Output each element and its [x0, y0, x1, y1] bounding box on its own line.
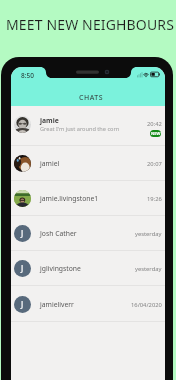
button[interactable]: J — [11, 251, 165, 286]
staticText: 8:50 — [21, 71, 34, 80]
staticText: MEET NEW NEIGHBOURS — [6, 15, 175, 34]
button[interactable]: jamie.livingstone1 — [11, 181, 165, 216]
staticText: J — [21, 228, 24, 239]
button[interactable]: J — [11, 216, 165, 251]
staticText: 16/04/2020 — [131, 301, 162, 309]
staticText: jglivingstone — [40, 264, 81, 273]
staticText: jamie — [40, 116, 59, 125]
staticText: yesterday — [135, 265, 162, 273]
staticText: J — [21, 299, 24, 310]
staticText: yesterday — [135, 230, 162, 238]
button[interactable]: jamiel — [11, 146, 165, 181]
staticText: jamiel — [40, 159, 60, 168]
staticText: CHATS — [79, 93, 104, 103]
staticText: jamie.livingstone1 — [40, 194, 99, 203]
staticText: Great I'm just around the corn — [40, 125, 120, 133]
staticText: 20:42 — [147, 120, 162, 128]
staticText: 20:07 — [147, 160, 162, 168]
staticText: jamieliverr — [40, 300, 74, 309]
button[interactable]: jamie — [11, 106, 165, 146]
staticText: Josh Cather — [40, 229, 77, 238]
button[interactable]: J — [11, 286, 165, 322]
staticText: 19:26 — [147, 195, 162, 203]
staticText: NEW — [151, 131, 161, 136]
staticText: J — [21, 263, 24, 274]
